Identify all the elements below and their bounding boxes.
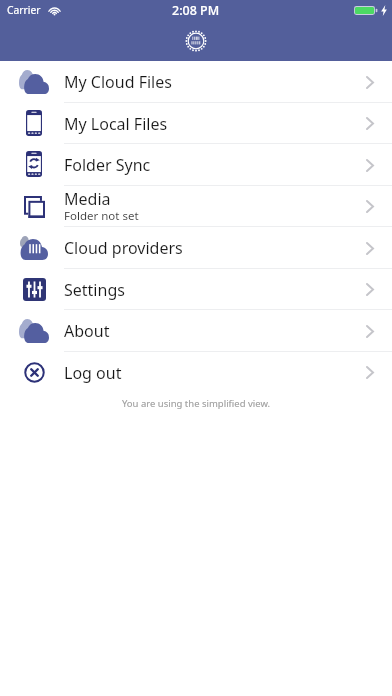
staticText: Cloud providers <box>64 237 183 259</box>
button[interactable]: Media <box>0 186 392 227</box>
button[interactable]: Settings <box>0 269 392 310</box>
staticText: About <box>64 320 110 342</box>
staticText: Media <box>64 188 111 210</box>
button[interactable]: Cloud providers <box>0 227 392 269</box>
button[interactable]: Log out <box>0 352 392 393</box>
staticText: Log out <box>64 362 122 384</box>
button[interactable]: Folder Sync <box>0 144 392 186</box>
button[interactable]: My Cloud Files <box>0 61 392 103</box>
staticText: 2:08 PM <box>172 2 220 19</box>
staticText: Carrier <box>7 3 41 17</box>
staticText: Settings <box>64 279 125 301</box>
button[interactable]: About <box>0 310 392 352</box>
staticText: My Cloud Files <box>64 71 172 93</box>
staticText: Folder not set <box>64 208 139 224</box>
staticText: My Local Files <box>64 113 168 135</box>
staticText: You are using the simplified view. <box>0 397 392 410</box>
button[interactable]: My Local Files <box>0 103 392 144</box>
staticText: Folder Sync <box>64 154 151 176</box>
other: App logo <box>185 30 207 52</box>
